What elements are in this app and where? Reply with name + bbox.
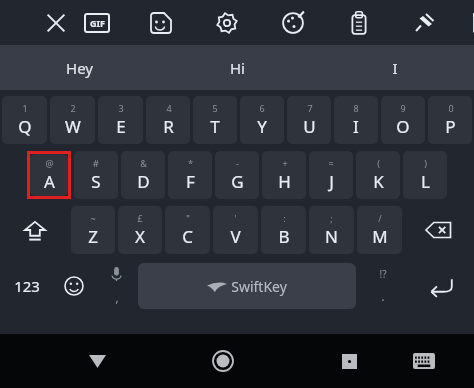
button[interactable]: £ xyxy=(118,206,162,254)
button[interactable]: Hey xyxy=(0,45,158,90)
staticText: B xyxy=(278,225,290,248)
button[interactable]: & xyxy=(121,151,165,199)
staticText: P xyxy=(445,115,456,138)
staticText: ; xyxy=(330,212,333,224)
button[interactable]: Recents xyxy=(327,339,371,383)
button[interactable]: + xyxy=(262,151,306,199)
button[interactable]: Clipboard xyxy=(344,8,374,38)
staticText: N xyxy=(325,225,338,248)
staticText: = xyxy=(328,157,334,169)
button[interactable]: Close xyxy=(42,9,70,37)
button[interactable]: GIF xyxy=(84,13,110,33)
staticText: Hi xyxy=(230,58,245,78)
button[interactable]: Voice input and comma xyxy=(95,261,138,311)
staticText: J xyxy=(329,170,334,193)
staticText: & xyxy=(140,157,147,169)
button[interactable]: " xyxy=(165,206,210,254)
staticText: Q xyxy=(18,115,32,138)
button[interactable]: / xyxy=(357,206,402,254)
staticText: " xyxy=(186,212,190,224)
staticText: ~ xyxy=(90,212,96,224)
staticText: 1 xyxy=(22,102,28,114)
staticText: Y xyxy=(257,115,267,138)
button[interactable]: ~ xyxy=(71,206,115,254)
staticText: : xyxy=(283,212,286,224)
button[interactable]: ; xyxy=(309,206,354,254)
button[interactable]: 6 xyxy=(240,96,284,144)
staticText: Z xyxy=(88,225,98,248)
button[interactable]: Settings xyxy=(212,8,242,38)
button[interactable]: * xyxy=(168,151,212,199)
staticText: W xyxy=(65,115,81,138)
button[interactable]: Back xyxy=(75,339,119,383)
button[interactable]: !? xyxy=(356,261,410,311)
staticText: L xyxy=(421,170,430,193)
button[interactable]: Stickers xyxy=(146,8,176,38)
button[interactable]: 3 xyxy=(98,96,143,144)
button[interactable]: = xyxy=(309,151,353,199)
button[interactable]: - xyxy=(215,151,259,199)
staticText: F xyxy=(186,170,195,193)
staticText: 0 xyxy=(448,102,454,114)
staticText: ( xyxy=(377,157,380,169)
staticText: £ xyxy=(137,212,143,224)
button[interactable]: 5 xyxy=(193,96,237,144)
staticText: K xyxy=(373,170,384,193)
staticText: A xyxy=(44,170,55,193)
staticText: !? xyxy=(379,267,387,281)
staticText: ) xyxy=(424,157,427,169)
staticText: . xyxy=(381,287,385,305)
button[interactable]: Shift xyxy=(2,206,68,254)
staticText: # xyxy=(93,157,99,169)
button[interactable]: 4 xyxy=(146,96,190,144)
button[interactable]: Theme xyxy=(278,8,308,38)
button[interactable]: Home xyxy=(201,339,245,383)
staticText: X xyxy=(135,225,145,248)
staticText: 7 xyxy=(307,102,313,114)
staticText: 5 xyxy=(212,102,218,114)
button[interactable]: I xyxy=(316,45,474,90)
button[interactable]: ) xyxy=(403,151,447,199)
staticText: + xyxy=(282,157,288,169)
button[interactable]: 9 xyxy=(381,96,425,144)
staticText: U xyxy=(303,115,316,138)
button[interactable]: 8 xyxy=(334,96,378,144)
staticText: G xyxy=(231,170,244,193)
button[interactable]: Space xyxy=(138,263,356,309)
staticText: M xyxy=(372,225,388,248)
button[interactable]: 7 xyxy=(287,96,331,144)
button[interactable]: Switch keyboard xyxy=(402,339,446,383)
button[interactable]: 2 xyxy=(50,96,95,144)
staticText: D xyxy=(137,170,150,193)
button[interactable]: ( xyxy=(356,151,400,199)
button[interactable]: Emoji xyxy=(52,261,95,311)
staticText: R xyxy=(163,115,174,138)
button[interactable]: # xyxy=(74,151,118,199)
button[interactable]: : xyxy=(261,206,306,254)
button[interactable]: Hi xyxy=(158,45,316,90)
button[interactable]: Enter xyxy=(410,261,472,311)
staticText: I xyxy=(353,115,359,138)
button[interactable]: Pin xyxy=(410,8,440,38)
staticText: 3 xyxy=(118,102,124,114)
staticText: , xyxy=(115,288,119,306)
button[interactable]: ' xyxy=(213,206,258,254)
button[interactable]: 0 xyxy=(428,96,472,144)
staticText: * xyxy=(188,157,193,169)
staticText: I xyxy=(392,58,398,78)
staticText: GIF xyxy=(90,17,105,29)
staticText: 8 xyxy=(353,102,359,114)
staticText: 6 xyxy=(259,102,265,114)
staticText: - xyxy=(236,157,239,169)
staticText: V xyxy=(230,225,241,248)
staticText: / xyxy=(378,212,382,224)
button[interactable]: 1 xyxy=(2,96,47,144)
staticText: ' xyxy=(234,212,237,224)
staticText: O xyxy=(396,115,410,138)
button[interactable]: 123 xyxy=(2,261,52,311)
staticText: H xyxy=(278,170,291,193)
button[interactable]: Backspace xyxy=(405,206,472,254)
staticText: S xyxy=(91,170,101,193)
staticText: C xyxy=(182,225,193,248)
button[interactable]: @ xyxy=(30,154,68,196)
